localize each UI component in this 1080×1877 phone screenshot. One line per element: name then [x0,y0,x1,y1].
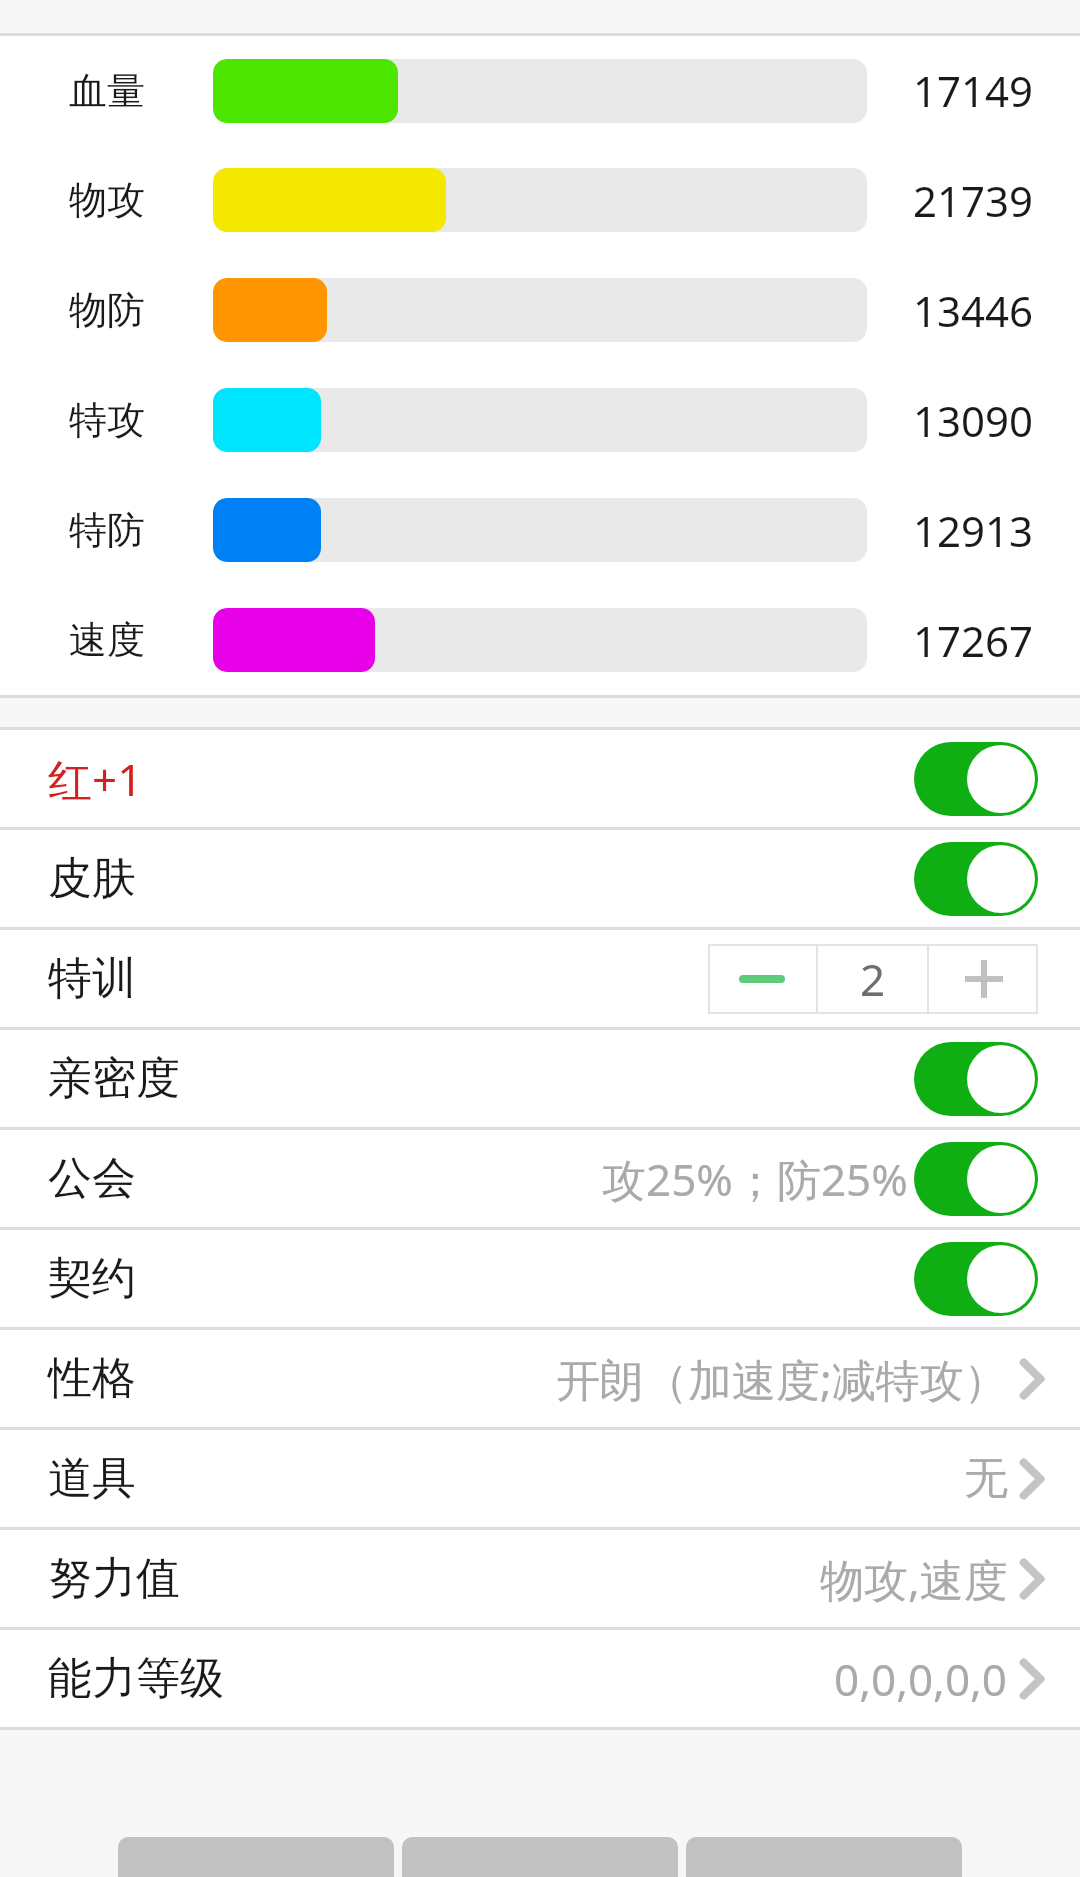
staticText: 红+1 [48,749,143,809]
button[interactable]: Toggle [914,1042,1038,1116]
staticText: 13446 [913,282,1034,339]
staticText: 攻25%；防25% [602,1149,908,1209]
button[interactable]: 能力等级 [0,1630,1080,1727]
staticText: 能力等级 [48,1651,224,1706]
button[interactable]: Decrease [708,944,816,1014]
staticText: 17267 [913,612,1034,669]
staticText: 17149 [913,62,1034,119]
staticText: 特训 [48,951,136,1006]
button[interactable]: Increase [929,944,1038,1014]
staticText: 无 [964,1451,1008,1506]
button[interactable]: 道具 [0,1430,1080,1527]
button[interactable]: 皮肤 [0,830,1080,927]
button[interactable]: 亲密度 [0,1030,1080,1127]
button[interactable]: Action [686,1837,962,1877]
staticText: 公会 [48,1151,136,1206]
button[interactable]: 特训 [0,930,1080,1027]
staticText: 皮肤 [48,851,136,906]
staticText: 0,0,0,0,0 [834,1649,1008,1709]
staticText: 特攻 [69,396,145,444]
staticText: 速度 [69,616,145,664]
staticText: 开朗（加速度;减特攻） [556,1349,1008,1409]
button[interactable]: 公会 [0,1130,1080,1227]
button[interactable]: Toggle [914,1242,1038,1316]
button[interactable]: Action [402,1837,678,1877]
button[interactable]: Toggle [914,842,1038,916]
button[interactable]: Action [118,1837,394,1877]
button[interactable]: Toggle [914,742,1038,816]
staticText: 亲密度 [48,1051,180,1106]
button[interactable]: 契约 [0,1230,1080,1327]
staticText: 12913 [913,502,1034,559]
staticText: 13090 [913,392,1034,449]
button[interactable]: 性格 [0,1330,1080,1427]
staticText: 21739 [913,172,1034,229]
button[interactable]: Toggle [914,1142,1038,1216]
staticText: 血量 [69,67,145,115]
button[interactable]: 努力值 [0,1530,1080,1627]
staticText: 物攻,速度 [820,1549,1008,1609]
staticText: 努力值 [48,1551,180,1606]
staticText: 道具 [48,1451,136,1506]
button[interactable]: 红+1 [0,730,1080,827]
staticText: 契约 [48,1251,136,1306]
staticText: 特防 [69,506,145,554]
staticText: 2 [860,949,886,1009]
staticText: 物攻 [69,176,145,224]
staticText: 性格 [48,1351,136,1406]
staticText: 物防 [69,286,145,334]
